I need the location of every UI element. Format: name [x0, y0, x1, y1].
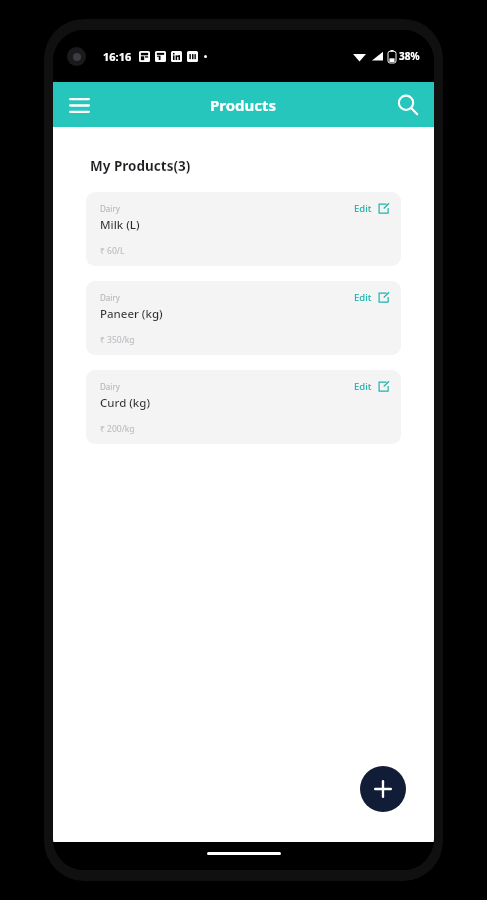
- staticText: ₹ 60/L: [100, 245, 125, 257]
- button[interactable]: Dairy: [86, 370, 401, 444]
- button[interactable]: Search: [388, 85, 428, 125]
- button[interactable]: Open navigation menu: [59, 85, 99, 125]
- staticText: Milk (L): [100, 217, 140, 233]
- staticText: ₹ 350/kg: [100, 334, 135, 346]
- button[interactable]: Add product: [360, 766, 406, 812]
- staticText: Edit: [354, 202, 372, 215]
- staticText: My Products(3): [90, 157, 191, 175]
- button[interactable]: Dairy: [86, 192, 401, 266]
- button[interactable]: Edit: [350, 198, 393, 219]
- staticText: Products: [210, 95, 277, 115]
- button[interactable]: Edit: [350, 287, 393, 308]
- staticText: Edit: [354, 291, 372, 304]
- staticText: Dairy: [100, 381, 120, 392]
- button[interactable]: Dairy: [86, 281, 401, 355]
- staticText: 38%: [399, 49, 420, 63]
- staticText: Edit: [354, 380, 372, 393]
- staticText: ₹ 200/kg: [100, 423, 135, 435]
- staticText: Curd (kg): [100, 395, 151, 411]
- staticText: Paneer (kg): [100, 306, 163, 322]
- staticText: Dairy: [100, 292, 120, 303]
- button[interactable]: Edit: [350, 376, 393, 397]
- staticText: 16:16: [103, 49, 132, 64]
- staticText: Dairy: [100, 203, 120, 214]
